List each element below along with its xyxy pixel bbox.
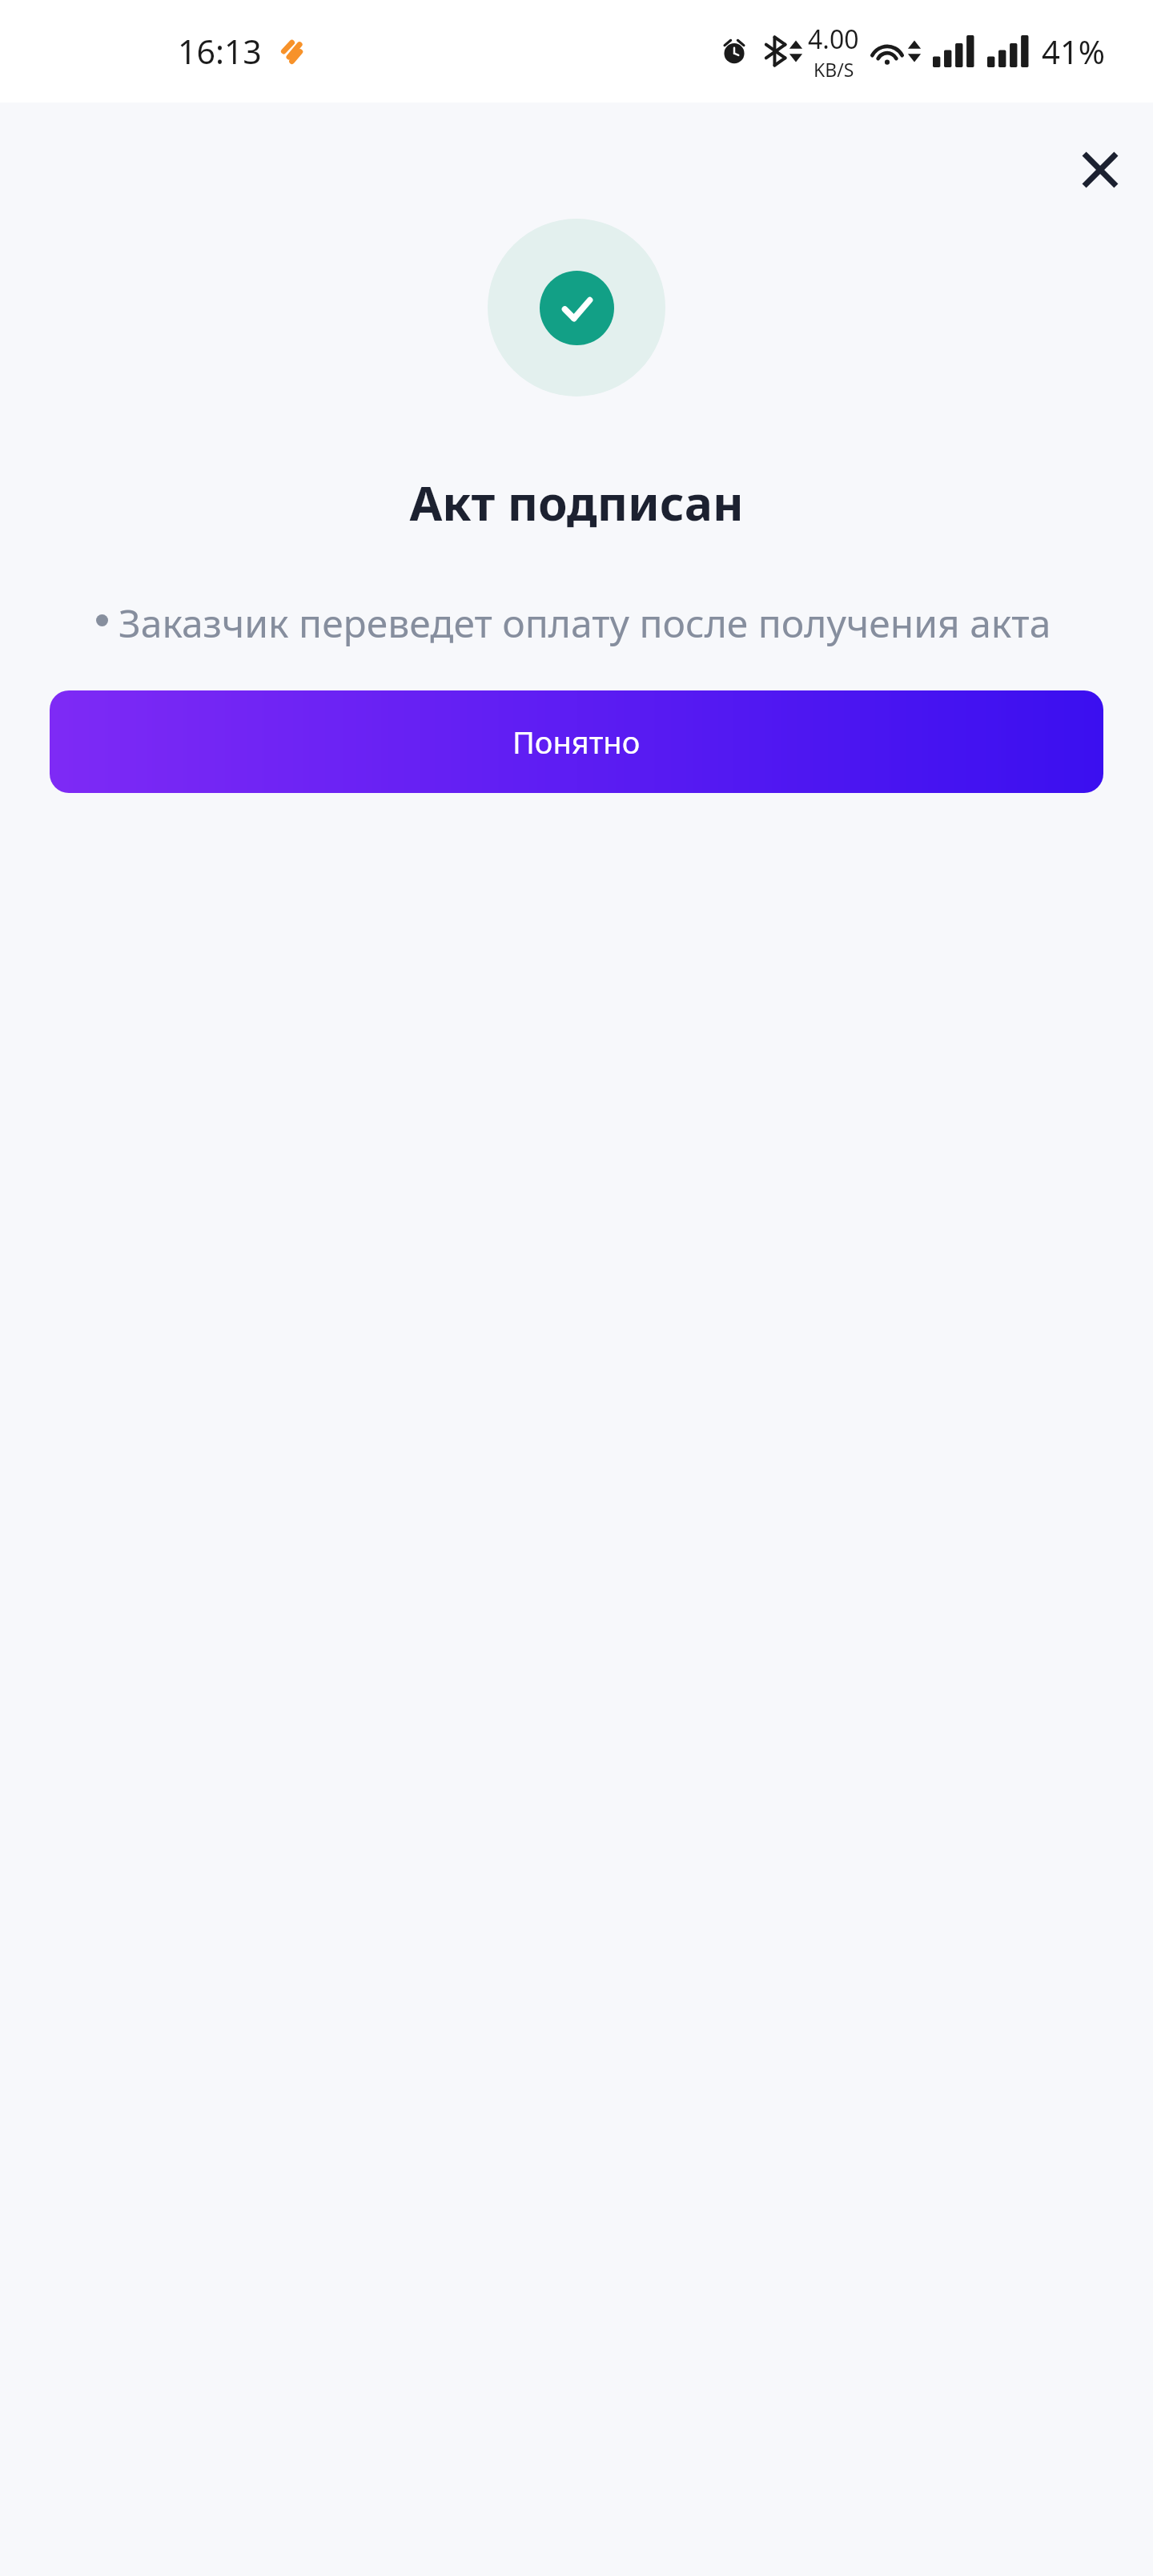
staticText: Заказчик переведет оплату после получени… (119, 597, 1051, 649)
staticText: KB/S (814, 57, 854, 82)
staticText: Акт подписан (0, 470, 1153, 534)
staticText: 4.00 (808, 22, 859, 57)
staticText: 41% (1042, 30, 1105, 73)
staticText: Понятно (512, 721, 641, 763)
staticText: 16:13 (178, 29, 262, 74)
button[interactable]: Понятно (50, 690, 1103, 793)
button[interactable]: Close (1062, 131, 1139, 208)
